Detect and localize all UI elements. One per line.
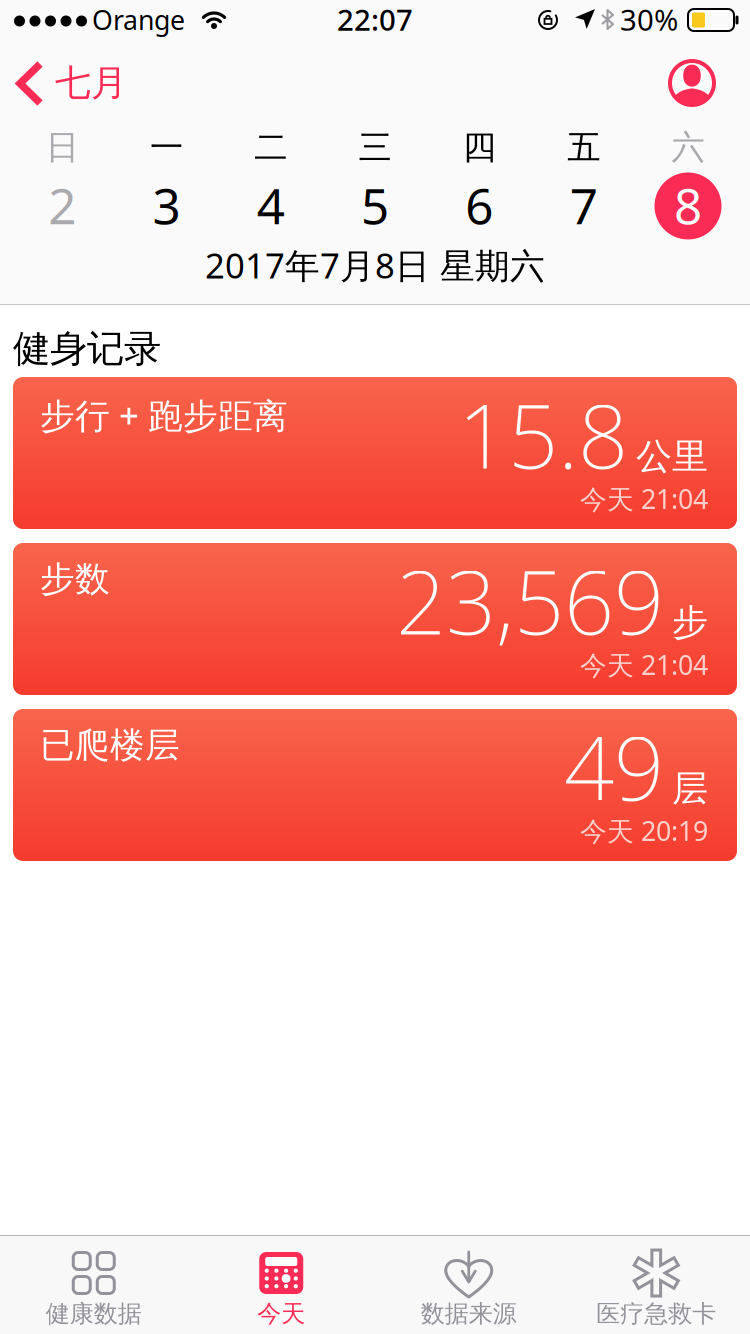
staticText: 23,569 — [396, 542, 664, 659]
staticText: 七月 — [55, 61, 127, 105]
button[interactable]: 健康数据 — [0, 1235, 187, 1334]
button[interactable]: 已爬楼层 — [13, 709, 737, 861]
staticText: 五 — [567, 127, 600, 168]
button[interactable] — [668, 59, 716, 107]
button[interactable]: 步行 + 跑步距离 — [13, 377, 737, 529]
staticText: 层 — [672, 766, 708, 811]
button[interactable]: 7 — [531, 170, 636, 240]
staticText: 8 — [674, 172, 702, 238]
button[interactable]: 5 — [323, 170, 427, 240]
staticText: 30% — [620, 0, 678, 39]
staticText: 医疗急救卡 — [596, 1299, 716, 1328]
staticText: 一 — [150, 127, 183, 168]
staticText: 已爬楼层 — [40, 724, 180, 767]
staticText: 六 — [671, 127, 704, 168]
button[interactable]: 数据来源 — [375, 1235, 562, 1334]
staticText: 5 — [361, 172, 389, 238]
staticText: 15.8 — [458, 376, 628, 493]
button[interactable]: 6 — [427, 170, 531, 240]
staticText: 2 — [48, 172, 76, 238]
staticText: 三 — [358, 127, 391, 168]
button[interactable]: 步数 — [13, 543, 737, 695]
staticText: 4 — [257, 172, 285, 238]
staticText: 健身记录 — [13, 326, 161, 372]
staticText: 6 — [465, 172, 493, 238]
staticText: 步行 + 跑步距离 — [40, 392, 288, 438]
button[interactable]: 医疗急救卡 — [562, 1235, 750, 1334]
staticText: 49 — [564, 708, 664, 825]
staticText: Orange — [92, 2, 185, 37]
staticText: 今天 — [257, 1299, 305, 1328]
staticText: 日 — [46, 127, 79, 168]
staticText: 二 — [254, 127, 287, 168]
button[interactable]: 2 — [10, 170, 114, 240]
button[interactable]: 今天 — [187, 1235, 375, 1334]
staticText: 步数 — [40, 558, 110, 601]
button[interactable]: 3 — [114, 170, 219, 240]
staticText: 今天 20:19 — [580, 813, 708, 848]
staticText: 数据来源 — [421, 1299, 517, 1328]
button[interactable]: 4 — [219, 170, 323, 240]
staticText: 健康数据 — [46, 1299, 142, 1328]
staticText: 22:07 — [337, 0, 413, 39]
staticText: 2017年7月8日 星期六 — [205, 242, 545, 288]
staticText: 今天 21:04 — [580, 481, 708, 516]
staticText: 7 — [570, 172, 598, 238]
staticText: 公里 — [636, 434, 708, 479]
button[interactable]: 七月 — [20, 61, 112, 105]
button[interactable]: 8 — [636, 170, 740, 240]
staticText: 3 — [152, 172, 180, 238]
staticText: 四 — [463, 127, 496, 168]
staticText: 今天 21:04 — [580, 647, 708, 682]
staticText: 步 — [672, 600, 708, 645]
